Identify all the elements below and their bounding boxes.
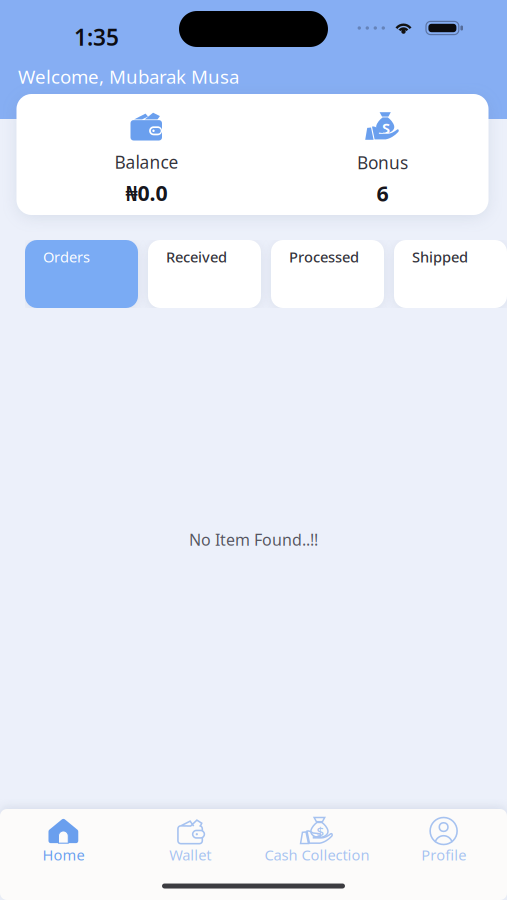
staticText: Home bbox=[42, 845, 84, 864]
staticText: Welcome, Mubarak Musa bbox=[18, 64, 239, 89]
staticText: S bbox=[382, 118, 390, 138]
staticText: 1:35 bbox=[74, 22, 119, 52]
button[interactable]: Shipped bbox=[394, 240, 507, 308]
button[interactable]: Profile bbox=[380, 809, 507, 868]
button[interactable]: $ bbox=[253, 809, 380, 868]
button[interactable]: Wallet bbox=[127, 809, 254, 868]
staticText: Profile bbox=[421, 845, 466, 864]
staticText: Shipped bbox=[412, 247, 468, 266]
staticText: Cash Collection bbox=[264, 845, 369, 864]
staticText: No Item Found..!! bbox=[189, 529, 318, 550]
staticText: $ bbox=[316, 823, 324, 840]
button[interactable]: Received bbox=[148, 240, 261, 308]
staticText: Bonus bbox=[357, 151, 408, 174]
staticText: Wallet bbox=[169, 845, 211, 864]
staticText: Received bbox=[166, 247, 227, 266]
staticText: Orders bbox=[43, 247, 90, 266]
button[interactable]: Orders bbox=[25, 240, 138, 308]
button[interactable]: Home bbox=[0, 809, 127, 868]
staticText: Balance bbox=[114, 150, 178, 173]
staticText: 6 bbox=[376, 179, 388, 207]
staticText: ₦0.0 bbox=[125, 178, 167, 207]
button[interactable]: Processed bbox=[271, 240, 384, 308]
staticText: Processed bbox=[289, 247, 359, 266]
